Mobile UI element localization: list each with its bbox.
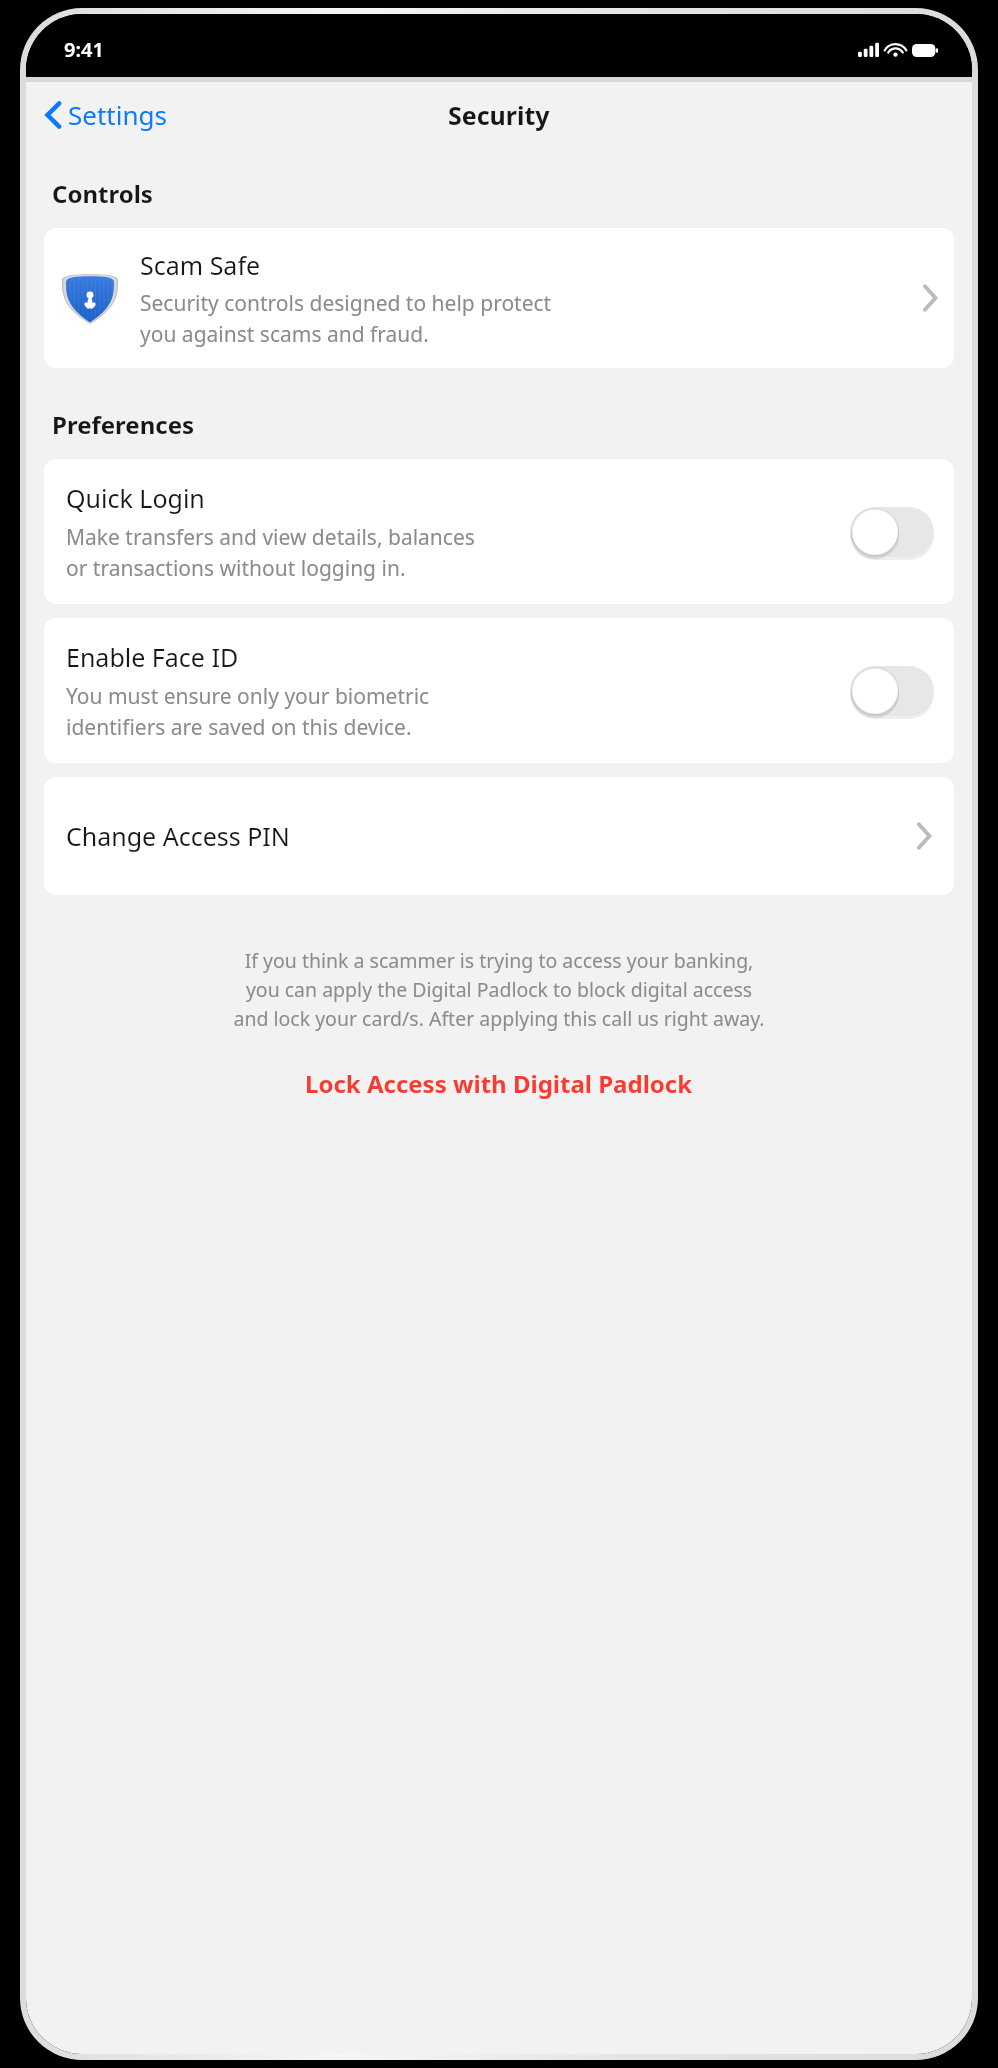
staticText: Make transfers and view details, balance… — [66, 523, 475, 582]
button[interactable]: Quick Login — [44, 459, 954, 604]
staticText: If you think a scammer is trying to acce… — [52, 947, 946, 1031]
staticText: Scam Safe — [140, 248, 261, 282]
staticText: Controls — [52, 177, 153, 210]
button[interactable]: Settings — [38, 93, 175, 136]
button[interactable]: Toggle, off — [850, 666, 934, 716]
staticText: Security — [448, 98, 550, 132]
staticText: You must ensure only your biometric iden… — [66, 682, 430, 741]
button[interactable]: Scam Safe shield — [44, 228, 954, 368]
button[interactable]: Toggle, off — [850, 507, 934, 557]
staticText: Security controls designed to help prote… — [140, 289, 552, 348]
staticText: 9:41 — [64, 36, 104, 63]
other: Scam Safe shield — [62, 270, 118, 326]
staticText: Quick Login — [66, 481, 205, 515]
staticText: Settings — [68, 97, 167, 132]
staticText: Change Access PIN — [66, 819, 916, 853]
button[interactable]: Enable Face ID — [44, 618, 954, 763]
staticText: Preferences — [52, 408, 195, 441]
button[interactable]: Change Access PIN — [44, 777, 954, 895]
button[interactable]: Lock Access with Digital Padlock — [26, 1057, 972, 1110]
staticText: Enable Face ID — [66, 640, 239, 674]
staticText: Lock Access with Digital Padlock — [305, 1067, 693, 1100]
